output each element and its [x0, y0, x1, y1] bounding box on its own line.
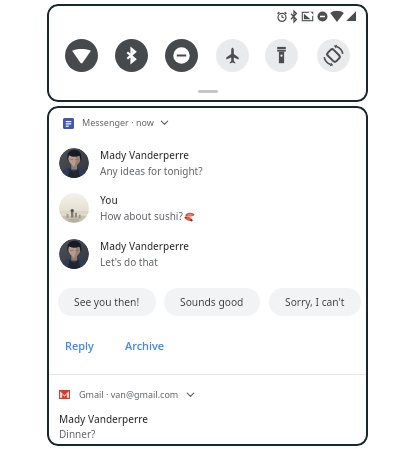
button[interactable]: Archive	[122, 334, 168, 356]
staticText: How about sushi?	[100, 209, 183, 223]
staticText: Any ideas for tonight?	[100, 164, 203, 178]
button[interactable]: Wi-Fi	[65, 39, 98, 72]
staticText: Mady Vanderperre	[59, 412, 149, 426]
staticText: Gmail · van@gmail.com	[79, 388, 179, 400]
button[interactable]: Bluetooth	[115, 39, 148, 72]
staticText: Mady Vanderperre	[100, 148, 190, 162]
button[interactable]: Gmail · van@gmail.com	[59, 383, 203, 405]
button[interactable]: Mady Vanderperre	[55, 238, 361, 278]
button[interactable]: See you then!	[58, 288, 156, 316]
staticText: You	[100, 193, 118, 207]
staticText: Let's do that	[100, 255, 158, 269]
button[interactable]: Mady Vanderperre	[59, 412, 149, 441]
button[interactable]: Sounds good	[164, 288, 260, 316]
staticText: Archive	[125, 338, 165, 353]
staticText: Reply	[65, 338, 94, 353]
staticText: Sorry, I can't	[285, 295, 345, 309]
button[interactable]: Flashlight	[265, 39, 298, 72]
button[interactable]: Reply	[62, 334, 97, 356]
button[interactable]: Messenger · now	[61, 111, 177, 133]
staticText: Mady Vanderperre	[100, 239, 190, 253]
staticText: See you then!	[74, 295, 140, 309]
button[interactable]: Do not disturb	[165, 39, 198, 72]
button[interactable]: Airplane mode	[216, 39, 249, 72]
button[interactable]: Mady Vanderperre	[55, 147, 361, 187]
staticText: Dinner?	[59, 427, 96, 441]
staticText: Messenger · now	[82, 116, 154, 128]
staticText: Sounds good	[180, 295, 244, 309]
button[interactable]: Sorry, I can't	[269, 288, 361, 316]
button[interactable]: Auto rotate	[317, 39, 350, 72]
button[interactable]: You	[55, 192, 361, 232]
